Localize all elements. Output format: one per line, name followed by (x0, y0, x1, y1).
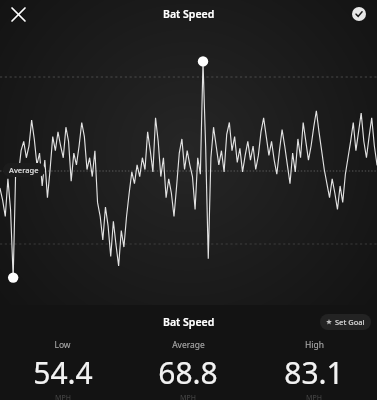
button[interactable]: Set Goal (320, 314, 371, 330)
staticText: 68.8 (158, 352, 218, 393)
button[interactable]: Average (3, 163, 45, 177)
staticText: 83.1 (284, 352, 344, 393)
button[interactable]: High (251, 339, 377, 400)
button[interactable]: Low (0, 339, 125, 400)
button[interactable]: Done (347, 2, 371, 26)
staticText: Bat Speed (163, 7, 215, 21)
staticText: MPH (55, 393, 71, 400)
staticText: 54.4 (33, 352, 93, 393)
staticText: Set Goal (335, 317, 365, 327)
staticText: Average (9, 165, 39, 175)
staticText: High (305, 339, 324, 351)
staticText: MPH (180, 393, 196, 400)
staticText: Bat Speed (163, 315, 215, 329)
button[interactable]: Close (4, 0, 32, 28)
staticText: MPH (306, 393, 322, 400)
button[interactable]: Average (125, 339, 251, 400)
staticText: Average (172, 339, 205, 351)
staticText: Low (54, 339, 71, 351)
